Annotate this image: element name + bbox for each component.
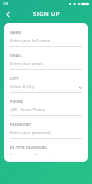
button[interactable]: Back <box>3 9 14 20</box>
staticText: PHONE <box>10 99 24 104</box>
staticText: 1:8 <box>3 1 8 6</box>
button[interactable]: PASSWORD <box>10 122 82 139</box>
staticText: Enter Phone <box>21 107 82 113</box>
staticText: Retype your Password <box>10 153 82 155</box>
staticText: RE-TYPE PASSWORD <box>10 145 48 150</box>
button[interactable]: RE-TYPE PASSWORD <box>10 145 82 155</box>
button[interactable]: CITY <box>10 76 82 93</box>
button[interactable]: EMAIL <box>10 53 82 70</box>
staticText: PASSWORD <box>10 122 31 127</box>
staticText: +91 <box>10 107 18 113</box>
staticText: Enter your email <box>10 61 82 67</box>
staticText: Select A City <box>10 84 79 90</box>
staticText: NAME <box>10 30 22 35</box>
staticText: SIGN UP <box>33 10 60 18</box>
staticText: EMAIL <box>10 53 22 58</box>
button[interactable]: PHONE <box>10 99 82 116</box>
button[interactable]: NAME <box>10 30 82 47</box>
staticText: Enter your full name <box>10 38 82 44</box>
staticText: CITY <box>10 76 19 81</box>
staticText: Enter your password <box>10 130 82 136</box>
